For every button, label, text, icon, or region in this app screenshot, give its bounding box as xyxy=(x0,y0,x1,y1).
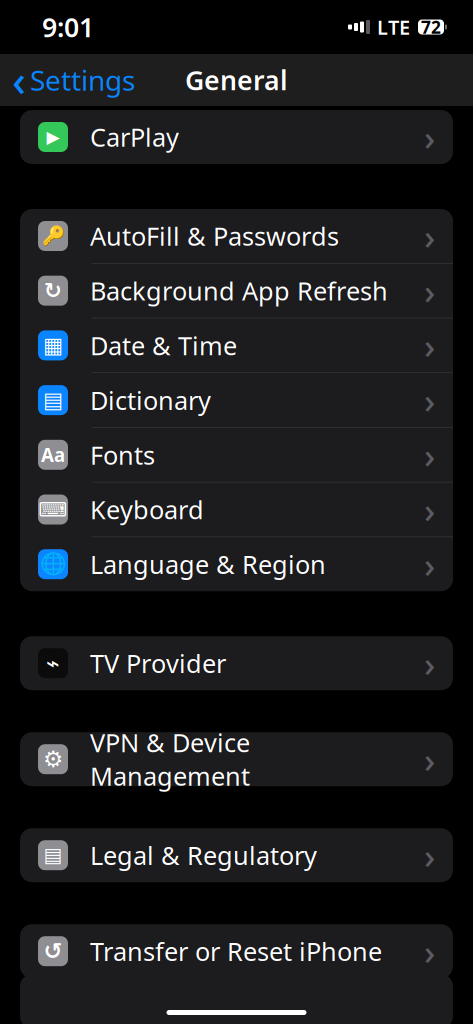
staticText: ↺ xyxy=(43,938,62,964)
staticText: ⌁ xyxy=(46,650,60,676)
staticText: › xyxy=(424,322,435,368)
staticText: › xyxy=(424,736,435,782)
button[interactable]: ⚙ xyxy=(20,732,453,786)
button[interactable]: ‹ xyxy=(0,48,135,112)
staticText: › xyxy=(424,541,435,587)
staticText: AutoFill & Passwords xyxy=(90,219,339,253)
staticText: 🌐 xyxy=(39,552,66,576)
staticText: › xyxy=(424,928,435,974)
staticText: Keyboard xyxy=(90,493,204,526)
staticText: › xyxy=(424,213,435,259)
staticText: › xyxy=(424,640,435,686)
staticText: ▦ xyxy=(43,333,63,357)
staticText: Settings xyxy=(30,61,135,99)
button[interactable]: 🔑 xyxy=(20,209,453,263)
staticText: 72 xyxy=(421,15,441,38)
button[interactable]: ⌨ xyxy=(20,482,453,536)
staticText: VPN & Device Management xyxy=(90,726,250,793)
staticText: Background App Refresh xyxy=(90,274,388,307)
staticText: Language & Region xyxy=(90,547,326,581)
button[interactable]: ↻ xyxy=(20,264,453,318)
staticText: Date & Time xyxy=(90,329,237,362)
staticText: General xyxy=(185,62,288,98)
staticText: Legal & Regulatory xyxy=(90,838,317,872)
staticText: CarPlay xyxy=(90,120,179,154)
button[interactable]: ↺ xyxy=(20,924,453,978)
staticText: TV Provider xyxy=(90,646,226,680)
button[interactable]: ⌁ xyxy=(20,636,453,690)
staticText: Dictionary xyxy=(90,383,211,417)
staticText: Aa xyxy=(41,442,65,467)
button[interactable]: ▤ xyxy=(20,828,453,882)
staticText: › xyxy=(424,114,435,160)
button[interactable]: 🌐 xyxy=(20,537,453,591)
staticText: › xyxy=(424,268,435,314)
staticText: ‹ xyxy=(12,52,26,108)
staticText: 🔑 xyxy=(41,225,64,247)
button[interactable]: ▦ xyxy=(20,318,453,372)
staticText: LTE xyxy=(377,14,410,40)
staticText: › xyxy=(424,486,435,532)
staticText: ▶ xyxy=(46,127,59,147)
staticText: Fonts xyxy=(90,438,155,472)
staticText: ▤ xyxy=(43,388,63,412)
staticText: ⚙ xyxy=(43,746,63,772)
button[interactable]: Aa xyxy=(20,428,453,482)
staticText: 9:01 xyxy=(42,9,94,45)
staticText: › xyxy=(424,832,435,878)
button[interactable]: ▤ xyxy=(20,373,453,427)
staticText: › xyxy=(424,377,435,423)
button[interactable]: ▶ xyxy=(20,110,453,164)
staticText: ↻ xyxy=(44,279,62,303)
staticText: ▤ xyxy=(43,844,62,867)
staticText: ⌨ xyxy=(38,498,67,521)
staticText: › xyxy=(424,432,435,478)
staticText: Transfer or Reset iPhone xyxy=(90,934,382,968)
